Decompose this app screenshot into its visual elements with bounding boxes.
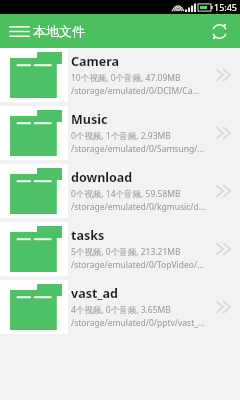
staticText: 15:45 — [214, 1, 238, 13]
staticText: 5个视频, 0个音频, 213.21MB — [71, 246, 181, 258]
button[interactable]: download — [0, 164, 240, 218]
staticText: Camera — [71, 53, 119, 70]
staticText: /storage/emulated/0/Samsung/Music — [71, 143, 206, 155]
button[interactable]: tasks — [0, 222, 240, 276]
staticText: /storage/emulated/0/kgmusic/down... — [71, 201, 206, 213]
button[interactable]: Open navigation menu — [6, 18, 32, 44]
button[interactable]: Refresh — [205, 17, 233, 45]
staticText: /storage/emulated/0/pptv/vast_ad — [71, 317, 206, 329]
button[interactable]: Music — [0, 106, 240, 160]
staticText: 本地文件 — [33, 23, 85, 39]
staticText: 4个视频, 0个音频, 3.65MB — [71, 304, 171, 316]
staticText: 0个视频, 1个音频, 2.93MB — [71, 130, 171, 142]
staticText: tasks — [71, 227, 105, 244]
staticText: 10个视频, 0个音频, 47.09MB — [71, 72, 181, 84]
staticText: 0个视频, 14个音频, 59.58MB — [71, 188, 181, 200]
staticText: Music — [71, 111, 108, 128]
button[interactable]: Camera — [0, 48, 240, 102]
staticText: /storage/emulated/0/TopVideo/stor... — [71, 259, 206, 271]
staticText: download — [71, 169, 133, 186]
button[interactable]: vast_ad — [0, 280, 240, 334]
staticText: vast_ad — [71, 285, 118, 302]
staticText: /storage/emulated/0/DCIM/Camera — [71, 85, 206, 97]
